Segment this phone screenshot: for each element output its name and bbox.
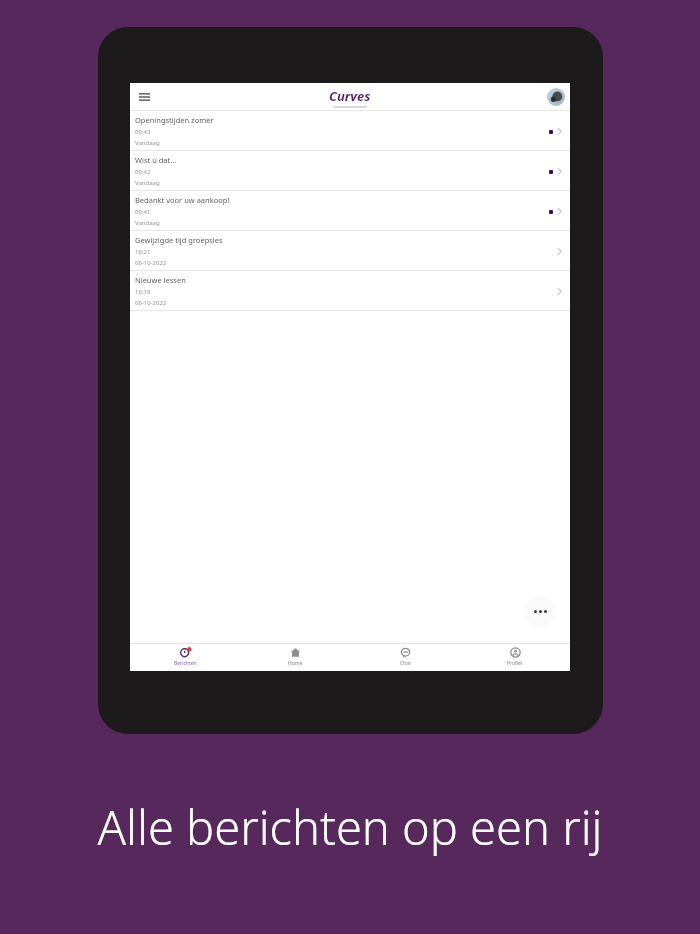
staticText: 09:42 — [135, 168, 151, 176]
staticText: Wist u dat... — [135, 155, 177, 165]
staticText: Vandaag — [135, 179, 160, 187]
staticText: Chat — [400, 660, 411, 667]
staticText: 06-10-2022 — [135, 299, 167, 307]
button[interactable]: Menu — [134, 87, 154, 107]
button[interactable]: Gewijzigde tijd groepsles — [130, 231, 570, 271]
staticText: Curves — [329, 87, 371, 105]
staticText: Berichten — [174, 660, 197, 667]
staticText: Nieuwe lessen — [135, 275, 186, 285]
staticText: 06-10-2022 — [135, 259, 167, 267]
staticText: Gewijzigde tijd groepsles — [135, 235, 223, 245]
staticText: Vandaag — [135, 219, 160, 227]
staticText: Vandaag — [135, 139, 160, 147]
staticText: Home — [288, 660, 303, 667]
button[interactable]: Wist u dat... — [130, 151, 570, 191]
staticText: 16:19 — [135, 288, 151, 296]
staticText: Profiel — [507, 660, 523, 667]
staticText: 16:21 — [135, 248, 151, 256]
button[interactable]: Chat — [350, 643, 460, 671]
button[interactable]: Nieuwe lessen — [130, 271, 570, 311]
button[interactable]: Profiel — [460, 643, 570, 671]
staticText: 09:41 — [135, 208, 151, 216]
staticText: 09:43 — [135, 128, 151, 136]
button[interactable]: Berichten — [130, 643, 240, 671]
button[interactable]: Bedankt voor uw aankoop! — [130, 191, 570, 231]
button[interactable]: Home — [240, 643, 350, 671]
button[interactable]: Profiel — [547, 88, 565, 106]
staticText: Bedankt voor uw aankoop! — [135, 195, 230, 205]
button[interactable]: Meer opties — [524, 595, 556, 627]
staticText: Alle berichten op een rij — [97, 795, 603, 859]
button[interactable]: Openingstijden zomer — [130, 111, 570, 151]
staticText: Openingstijden zomer — [135, 115, 214, 125]
